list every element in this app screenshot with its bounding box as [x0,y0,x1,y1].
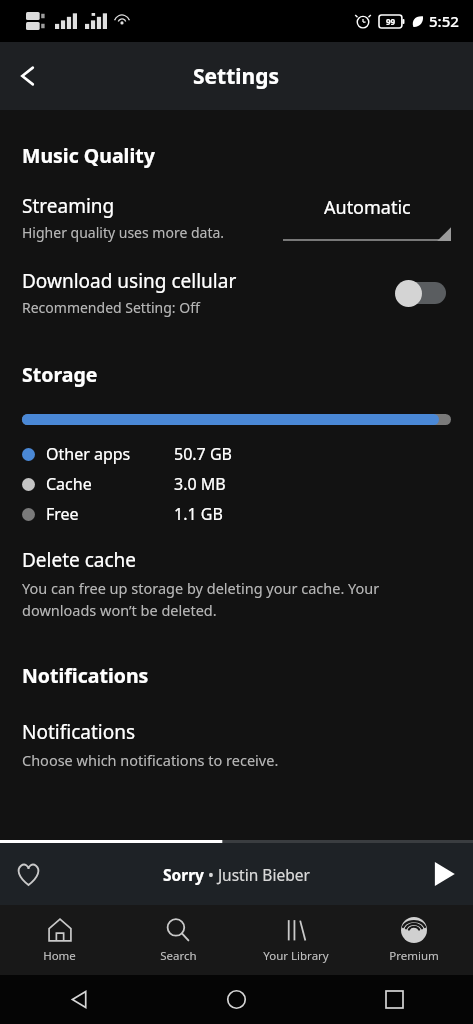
button[interactable]: Like [0,846,56,902]
button[interactable]: Back [0,975,157,1024]
staticText: Higher quality uses more data. [22,223,225,242]
staticText: Sorry [163,864,204,885]
staticText: 50.7 GB [174,443,232,465]
staticText: downloads won’t be deleted. [22,600,217,620]
staticText: Cache [46,473,92,495]
staticText: 3.0 MB [174,473,226,495]
staticText: 99 [386,16,396,27]
button[interactable]: Back [0,48,56,104]
staticText: Streaming [22,193,115,219]
staticText: 1.1 GB [174,503,223,525]
button[interactable]: Play [415,845,473,903]
staticText: Free [46,503,79,525]
staticText: Delete cache [22,547,137,573]
staticText: 5:52 [429,11,459,31]
button[interactable]: Recents [315,975,473,1024]
button[interactable]: Download using cellular [0,268,473,317]
staticText: Choose which notifications to receive. [22,750,279,770]
button[interactable]: Your Library [237,911,355,970]
staticText: Settings [193,62,280,91]
button[interactable]: Search [119,911,237,970]
staticText: • Justin Bieber [204,864,310,885]
staticText: Other apps [46,443,131,465]
button[interactable]: Home [157,975,315,1024]
staticText: Automatic [324,195,411,220]
staticText: Notifications [22,662,149,689]
button[interactable]: Delete cache [0,547,473,620]
staticText: Your Library [263,948,329,964]
staticText: Music Quality [22,142,155,169]
staticText: Search [160,948,197,964]
button[interactable]: Download using cellular toggle [395,277,451,309]
staticText: You can free up storage by deleting your… [22,578,380,598]
button[interactable]: Automatic [283,195,451,241]
staticText: Recommended Setting: Off [22,298,200,317]
button[interactable]: Notifications [0,719,473,770]
staticText: Premium [389,948,439,964]
staticText: Notifications [22,719,136,745]
staticText: Home [43,948,76,964]
button[interactable]: Premium [355,911,473,970]
button[interactable]: Streaming [0,193,473,242]
staticText: Download using cellular [22,268,237,294]
button[interactable]: Home [0,911,119,970]
staticText: Storage [22,361,98,388]
